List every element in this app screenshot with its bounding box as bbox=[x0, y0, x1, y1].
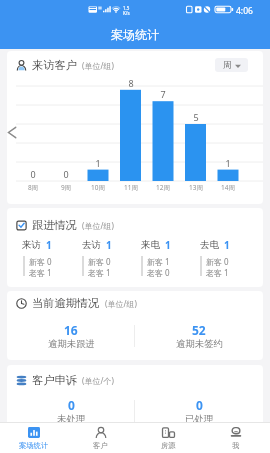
staticText: 0 bbox=[68, 397, 75, 413]
staticText: (单位/组) bbox=[82, 220, 114, 231]
staticText: 新客 0 bbox=[29, 256, 52, 267]
staticText: 8周 bbox=[19, 183, 47, 192]
staticText: 12周 bbox=[149, 183, 177, 192]
staticText: 已处理 bbox=[185, 413, 214, 425]
staticText: 1.5 K/s bbox=[123, 5, 130, 16]
staticText: 客户申诉 bbox=[32, 373, 77, 387]
staticText: 逾期未跟进 bbox=[48, 338, 95, 350]
button[interactable]: 我 bbox=[202, 423, 270, 453]
staticText: 14周 bbox=[214, 183, 242, 192]
staticText: 1 bbox=[165, 238, 171, 252]
staticText: 1 bbox=[88, 157, 108, 169]
staticText: 跟进情况 bbox=[32, 218, 77, 232]
staticText: 新客 1 bbox=[147, 256, 170, 267]
staticText: 4:06 bbox=[236, 5, 253, 17]
button[interactable]: 案场统计 bbox=[0, 423, 67, 453]
staticText: 当前逾期情况 bbox=[32, 296, 100, 310]
staticText: 1 bbox=[224, 238, 230, 252]
staticText: 来电 bbox=[141, 239, 160, 251]
staticText: (单位/组) bbox=[105, 298, 137, 309]
staticText: 13周 bbox=[182, 183, 210, 192]
staticText: (单位/组) bbox=[82, 60, 114, 71]
staticText: 去电 bbox=[200, 239, 219, 251]
staticText: 1 bbox=[46, 238, 52, 252]
staticText: 5 bbox=[186, 111, 206, 123]
staticText: (单位/个) bbox=[82, 375, 114, 386]
staticText: 老客 1 bbox=[206, 267, 229, 278]
staticText: 1 bbox=[106, 238, 112, 252]
staticText: 9周 bbox=[52, 183, 80, 192]
button[interactable]: 房源 bbox=[134, 423, 202, 453]
staticText: 0 bbox=[56, 168, 76, 180]
staticText: 新客 0 bbox=[206, 256, 229, 267]
staticText: 案场统计 bbox=[19, 441, 49, 450]
button[interactable]: 周 bbox=[215, 58, 248, 72]
staticText: 老客 1 bbox=[88, 267, 111, 278]
staticText: 0 bbox=[23, 168, 43, 180]
staticText: 客户 bbox=[93, 441, 108, 450]
staticText: 7 bbox=[153, 88, 173, 100]
staticText: 8 bbox=[121, 77, 141, 89]
staticText: 逾期未签约 bbox=[176, 338, 223, 350]
staticText: 老客 1 bbox=[29, 267, 52, 278]
staticText: 11周 bbox=[117, 183, 145, 192]
staticText: 10周 bbox=[84, 183, 112, 192]
staticText: 52 bbox=[192, 322, 206, 338]
staticText: 1 bbox=[218, 157, 238, 169]
staticText: 新客 0 bbox=[88, 256, 111, 267]
staticText: 房源 bbox=[161, 441, 176, 450]
staticText: 我 bbox=[232, 441, 240, 450]
staticText: 0 bbox=[196, 397, 203, 413]
staticText: 周 bbox=[223, 60, 232, 71]
staticText: 来访 bbox=[22, 239, 41, 251]
staticText: 案场统计 bbox=[111, 27, 159, 42]
staticText: 老客 0 bbox=[147, 267, 170, 278]
button[interactable]: 客户 bbox=[67, 423, 134, 453]
staticText: 去访 bbox=[82, 239, 101, 251]
staticText: 未处理 bbox=[57, 413, 86, 425]
staticText: 来访客户 bbox=[32, 58, 77, 72]
staticText: 16 bbox=[64, 322, 78, 338]
